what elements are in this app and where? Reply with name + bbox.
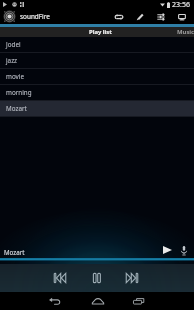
button[interactable]: Musics [177, 27, 194, 37]
button[interactable]: Pause [83, 264, 111, 292]
staticText: Musics [177, 28, 194, 36]
staticText: Jodel [6, 40, 21, 49]
button[interactable]: Edit [129, 9, 150, 24]
button[interactable]: morning [0, 85, 194, 100]
button[interactable]: Repeat [108, 9, 129, 24]
staticText: morning [6, 88, 32, 97]
button[interactable]: Equalizer [150, 9, 171, 24]
button[interactable]: Next [118, 264, 146, 292]
staticText: movie [6, 72, 24, 81]
button[interactable]: Previous [46, 264, 74, 292]
staticText: 23:56 [172, 0, 190, 9]
button[interactable]: Recents [127, 292, 151, 310]
button[interactable]: Voice search [176, 242, 192, 258]
button[interactable]: Back [43, 292, 67, 310]
button[interactable]: jazz [0, 53, 194, 68]
staticText: Mozart [4, 248, 25, 256]
staticText: Mozart [6, 104, 27, 113]
staticText: Play list [89, 28, 112, 36]
button[interactable]: Mozart [0, 101, 194, 116]
button[interactable]: Home [86, 292, 110, 310]
button[interactable]: Cast to screen [171, 9, 192, 24]
staticText: jazz [6, 56, 18, 65]
staticText: soundFire [20, 12, 50, 21]
button[interactable]: Jodel [0, 37, 194, 52]
button[interactable]: Play [158, 242, 176, 258]
button[interactable]: Play list [62, 27, 138, 37]
button[interactable]: movie [0, 69, 194, 84]
